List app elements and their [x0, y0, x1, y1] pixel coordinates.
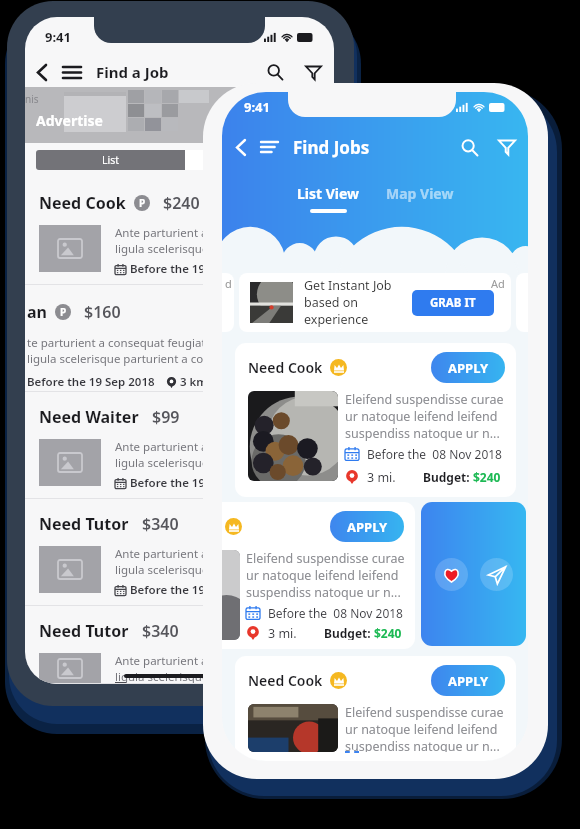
staticText: $99 [152, 406, 180, 428]
staticText: APPLY [448, 359, 489, 377]
staticText: 3 km [180, 374, 208, 390]
button[interactable]: APPLY [246, 299, 322, 325]
staticText: Eleifend suspendisse curae [246, 550, 405, 567]
staticText: an [27, 301, 47, 323]
staticText: Ad [491, 276, 505, 291]
button[interactable]: Need Tutor [25, 606, 334, 684]
staticText: d [225, 276, 232, 291]
staticText: APPLY [347, 518, 388, 536]
staticText: APPLY [448, 672, 489, 690]
button[interactable]: APPLY [330, 511, 404, 542]
button[interactable]: Search [456, 134, 482, 160]
staticText: ligula scelerisque [115, 241, 209, 257]
staticText: Get Instant Job [304, 277, 392, 294]
button[interactable]: Map View [386, 184, 454, 203]
staticText: P [139, 196, 146, 210]
staticText: 9:41 [244, 98, 270, 116]
button[interactable]: Share [480, 558, 513, 591]
staticText: suspendiss natoque ur n... [345, 425, 500, 442]
staticText: $160 [84, 301, 121, 323]
button[interactable]: GRAB IT [412, 290, 494, 316]
button[interactable]: APPLY [431, 665, 505, 696]
button[interactable]: Menu [59, 59, 85, 85]
staticText: Need Cook [248, 358, 323, 377]
button[interactable]: an [25, 285, 334, 392]
staticText: 3 mi. [268, 625, 297, 640]
button[interactable]: Back [29, 59, 55, 85]
staticText: Need Tutor [39, 513, 129, 535]
staticText: Ante parturient a [115, 653, 208, 669]
staticText: Map View [386, 184, 454, 203]
staticText: ur natoque leifend leifend [345, 721, 498, 738]
button[interactable]: Back [228, 134, 254, 160]
button[interactable]: Need Cook [235, 343, 516, 497]
button[interactable]: List View [297, 184, 360, 213]
staticText: ligula scelerisque parturient a consequa [27, 351, 244, 367]
staticText: Advertise [36, 111, 103, 130]
staticText: ligula scelerisque [115, 669, 209, 683]
button[interactable]: Need Cook [235, 656, 516, 761]
staticText: Eleifend suspendisse curae [345, 391, 504, 408]
staticText: $240 [473, 469, 501, 485]
staticText: $240 [374, 625, 402, 640]
staticText: List [102, 153, 120, 167]
staticText: te parturient a consequat feugiat [27, 335, 206, 351]
staticText: Ante parturient a [115, 439, 208, 455]
staticText: Need Tutor [39, 620, 129, 642]
staticText: Need Cook [248, 671, 323, 690]
staticText: Eleifend suspendisse curae [345, 704, 504, 721]
staticText: List View [297, 184, 360, 203]
staticText: Ante parturient a [115, 225, 208, 241]
staticText: 9:41 [45, 28, 71, 46]
staticText: APPLY [267, 305, 301, 320]
staticText: Ante parturient a [115, 546, 208, 562]
staticText: Need Waiter [39, 406, 139, 428]
staticText: Budget: [423, 469, 473, 485]
button[interactable]: Get Instant Job [239, 273, 511, 332]
staticText: Before the 19 Sep 2018 [27, 374, 155, 390]
staticText: ur natoque leifend leifend [345, 408, 498, 425]
button[interactable]: Need Tutor [25, 499, 334, 606]
staticText: Need Cook [39, 192, 126, 214]
button[interactable]: Need Waiter [25, 392, 334, 499]
staticText: P [60, 305, 67, 319]
staticText: Before the 08 Nov 2018 [367, 446, 502, 462]
button[interactable]: List [36, 150, 185, 170]
staticText: ligula scelerisque [115, 562, 209, 578]
staticText: Before the 19 [130, 261, 206, 277]
button[interactable]: Filter [494, 134, 520, 160]
staticText: Before the 08 Nov 2018 [268, 605, 403, 621]
staticText: Find a Job [96, 62, 169, 82]
staticText: suspendiss natoque ur n... [345, 738, 500, 752]
staticText: $340 [142, 513, 179, 535]
button[interactable]: Menu [256, 134, 282, 160]
staticText: GRAB IT [430, 295, 476, 311]
staticText: Before the 19 [130, 475, 206, 491]
staticText: Before the 19 [130, 582, 206, 598]
button[interactable]: Favorite [435, 558, 468, 591]
staticText: Find Jobs [293, 136, 370, 159]
button[interactable] [185, 150, 334, 170]
button[interactable]: APPLY [431, 352, 505, 383]
staticText: $240 [163, 192, 200, 214]
staticText: suspendiss natoque ur n... [246, 584, 401, 601]
staticText: nis [25, 92, 39, 106]
button[interactable]: Search [262, 59, 288, 85]
button[interactable]: Filter [300, 59, 326, 85]
staticText: $340 [142, 620, 179, 642]
staticText: 3 mi. [367, 469, 396, 486]
button[interactable]: Need Cook [25, 178, 334, 285]
button[interactable]: APPLY [222, 502, 415, 649]
staticText: ligula scelerisque [115, 455, 209, 471]
staticText: experience [304, 311, 369, 328]
staticText: based on [304, 294, 358, 311]
staticText: Budget: [324, 625, 374, 640]
staticText: ur natoque leifend leifend [246, 567, 399, 584]
